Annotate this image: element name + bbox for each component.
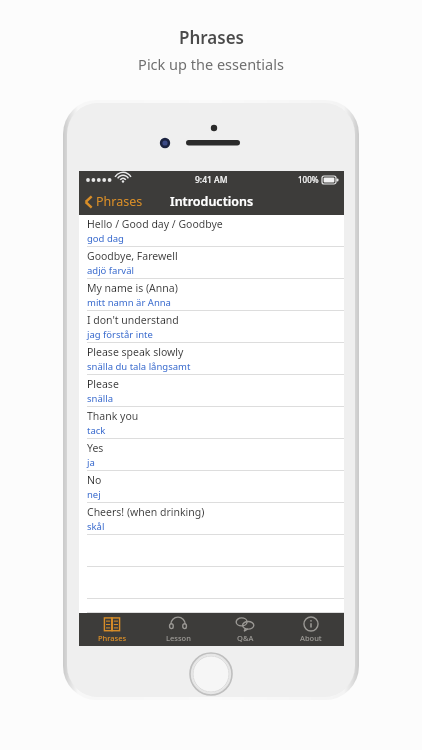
staticText: Q&A — [237, 633, 254, 643]
staticText: god dag — [87, 232, 124, 245]
staticText: No — [87, 473, 102, 487]
button[interactable]: My name is (Anna) — [79, 279, 344, 311]
staticText: jag förstår inte — [87, 328, 153, 341]
staticText: 9:41 AM — [195, 174, 228, 186]
staticText: nej — [87, 488, 101, 501]
staticText: Thank you — [87, 409, 139, 423]
staticText: Pick up the essentials — [138, 54, 284, 74]
staticText: Cheers! (when drinking) — [87, 505, 205, 519]
button[interactable]: Hello / Good day / Goodbye — [79, 215, 344, 247]
button[interactable]: Yes — [79, 439, 344, 471]
staticText: Phrases — [96, 193, 143, 210]
staticText: ja — [87, 456, 95, 469]
button[interactable]: Phrases — [79, 614, 145, 645]
button[interactable]: No — [79, 471, 344, 503]
button[interactable]: I don't understand — [79, 311, 344, 343]
staticText: mitt namn är Anna — [87, 296, 171, 309]
staticText: adjö farväl — [87, 264, 134, 277]
button[interactable]: Please speak slowly — [79, 343, 344, 375]
staticText: 100% — [298, 174, 319, 185]
staticText: My name is (Anna) — [87, 281, 178, 295]
staticText: Goodbye, Farewell — [87, 249, 178, 263]
button[interactable]: Cheers! (when drinking) — [79, 503, 344, 535]
button[interactable]: Lesson — [145, 614, 211, 645]
staticText: snälla du tala långsamt — [87, 360, 191, 373]
staticText: Please speak slowly — [87, 345, 184, 359]
button[interactable]: Q&A — [212, 614, 278, 645]
staticText: Yes — [87, 441, 104, 455]
staticText: skål — [87, 520, 105, 533]
staticText: Please — [87, 377, 119, 391]
staticText: About — [300, 633, 322, 643]
staticText: Hello / Good day / Goodbye — [87, 217, 223, 231]
button[interactable]: Thank you — [79, 407, 344, 439]
staticText: tack — [87, 424, 106, 437]
staticText: Lesson — [166, 633, 191, 643]
button[interactable]: Phrases — [79, 190, 151, 213]
button[interactable]: About — [278, 614, 344, 645]
staticText: Phrases — [179, 26, 244, 49]
button[interactable]: Goodbye, Farewell — [79, 247, 344, 279]
staticText: snälla — [87, 392, 113, 405]
staticText: Phrases — [98, 633, 127, 643]
staticText: I don't understand — [87, 313, 179, 327]
button[interactable]: Please — [79, 375, 344, 407]
staticText: Introductions — [170, 193, 254, 210]
